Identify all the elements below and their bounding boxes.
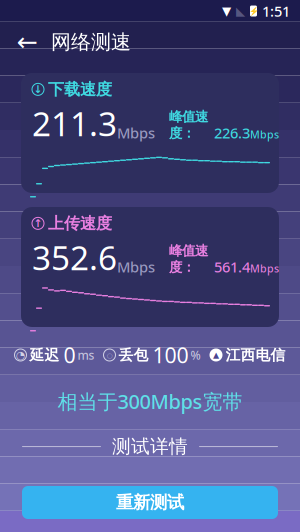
button[interactable]: 重新测试: [22, 486, 278, 519]
staticText: ↓: [33, 83, 42, 95]
staticText: ◔: [16, 349, 25, 361]
staticText: 网络测速: [51, 30, 131, 54]
staticText: 峰值速度：: [169, 109, 208, 141]
staticText: 100: [152, 341, 188, 369]
staticText: 测试详情: [112, 435, 188, 458]
staticText: 0: [63, 341, 75, 369]
staticText: 江西电信: [225, 346, 285, 364]
staticText: ms: [77, 347, 94, 363]
staticText: ◌: [106, 348, 112, 362]
staticText: %: [190, 347, 200, 363]
staticText: 561.4: [214, 257, 250, 276]
staticText: ▲: [213, 350, 219, 360]
staticText: 上传速度: [48, 213, 112, 233]
staticText: Mbps: [117, 123, 155, 142]
staticText: ⚡: [248, 6, 258, 15]
staticText: ◣: [236, 4, 245, 18]
button[interactable]: 返回: [8, 23, 46, 61]
staticText: 211.3: [32, 101, 117, 145]
staticText: ▼: [222, 4, 231, 18]
staticText: 352.6: [32, 235, 117, 279]
staticText: ←: [16, 28, 37, 56]
staticText: 相当于300Mbps宽带: [57, 388, 242, 415]
staticText: 下载速度: [48, 79, 112, 99]
staticText: 丢包: [118, 346, 148, 364]
staticText: 峰值速度：: [169, 243, 208, 275]
staticText: ↑: [33, 217, 42, 229]
staticText: 226.3: [214, 123, 250, 142]
staticText: 重新测试: [116, 492, 184, 513]
staticText: 1:51: [262, 1, 290, 21]
staticText: Mbps: [250, 261, 279, 275]
staticText: 延迟: [29, 346, 59, 364]
staticText: Mbps: [250, 127, 279, 141]
staticText: Mbps: [117, 257, 155, 276]
